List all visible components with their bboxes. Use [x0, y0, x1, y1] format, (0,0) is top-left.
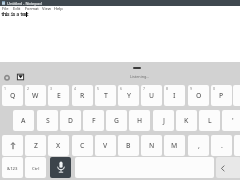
button[interactable]: P: [211, 85, 232, 106]
staticText: ,: [198, 141, 200, 150]
staticText: K: [184, 116, 189, 125]
staticText: S: [46, 116, 50, 125]
button[interactable]: ': [222, 110, 240, 131]
button[interactable]: R: [72, 85, 93, 106]
staticText: H: [137, 116, 143, 125]
button[interactable]: I: [164, 85, 185, 106]
button[interactable]: A: [13, 110, 34, 131]
button[interactable]: [233, 85, 240, 106]
button[interactable]: H: [129, 110, 150, 131]
staticText: T: [104, 91, 108, 100]
button[interactable]: &123: [2, 157, 23, 178]
button[interactable]: Q: [2, 85, 23, 106]
staticText: U: [149, 91, 155, 100]
staticText: Y: [127, 91, 131, 100]
button[interactable]: L: [199, 110, 220, 131]
button[interactable]: File: [2, 6, 9, 11]
button[interactable]: Help: [54, 6, 63, 11]
staticText: N: [149, 141, 155, 150]
staticText: M: [171, 141, 178, 150]
staticText: W: [32, 91, 39, 100]
button[interactable]: G: [106, 110, 127, 131]
button[interactable]: O: [188, 85, 209, 106]
staticText: Q: [10, 91, 16, 100]
staticText: 9: [190, 86, 193, 91]
button[interactable]: Ctrl: [25, 157, 46, 178]
staticText: V: [103, 141, 108, 150]
button[interactable]: View: [42, 6, 51, 11]
staticText: 4: [74, 86, 77, 91]
button[interactable]: .: [211, 135, 232, 156]
button[interactable]: S: [37, 110, 58, 131]
staticText: O: [196, 91, 202, 100]
staticText: Untitled - Notepad: [7, 1, 42, 6]
staticText: 6: [120, 86, 123, 91]
button[interactable]: U: [141, 85, 162, 106]
staticText: &123: [7, 165, 18, 171]
staticText: E: [57, 91, 61, 100]
staticText: X: [56, 141, 61, 150]
button[interactable]: N: [141, 135, 162, 156]
button[interactable]: X: [48, 135, 69, 156]
staticText: this is a test: [1, 11, 28, 18]
staticText: 1: [4, 86, 7, 91]
button[interactable]: [2, 135, 23, 156]
button[interactable]: K: [176, 110, 197, 131]
button[interactable]: J: [153, 110, 174, 131]
staticText: B: [126, 141, 131, 150]
button[interactable]: W: [25, 85, 46, 106]
button[interactable]: Format: [25, 6, 39, 11]
staticText: I: [173, 91, 176, 100]
button[interactable]: [216, 157, 240, 178]
button[interactable]: D: [60, 110, 81, 131]
button[interactable]: ,: [188, 135, 209, 156]
button[interactable]: C: [72, 135, 93, 156]
staticText: 5: [97, 86, 100, 91]
staticText: R: [80, 91, 85, 100]
staticText: 0: [213, 86, 216, 91]
staticText: 8: [166, 86, 169, 91]
button[interactable]: Y: [118, 85, 139, 106]
button[interactable]: [234, 135, 240, 156]
staticText: A: [21, 116, 26, 125]
button[interactable]: V: [95, 135, 116, 156]
staticText: F: [92, 116, 96, 125]
staticText: 2: [27, 86, 30, 91]
button[interactable]: E: [48, 85, 69, 106]
staticText: C: [80, 141, 85, 150]
button[interactable]: T: [95, 85, 116, 106]
staticText: 3: [50, 86, 53, 91]
button[interactable]: [2, 73, 26, 82]
staticText: ': [232, 116, 234, 125]
staticText: Z: [34, 141, 38, 150]
button[interactable]: M: [164, 135, 185, 156]
staticText: .: [221, 141, 223, 150]
staticText: 7: [143, 86, 146, 91]
staticText: J: [163, 116, 165, 125]
button[interactable]: B: [118, 135, 139, 156]
staticText: D: [68, 116, 73, 125]
staticText: P: [219, 91, 224, 100]
staticText: L: [208, 116, 212, 125]
button[interactable]: Edit: [13, 6, 21, 11]
button[interactable]: Z: [25, 135, 46, 156]
staticText: Listening...: [130, 74, 150, 79]
button[interactable]: [50, 157, 71, 178]
button[interactable]: F: [83, 110, 104, 131]
staticText: G: [114, 116, 119, 125]
button[interactable]: Untitled - Notepad: [0, 0, 240, 6]
staticText: Ctrl: [32, 165, 40, 171]
